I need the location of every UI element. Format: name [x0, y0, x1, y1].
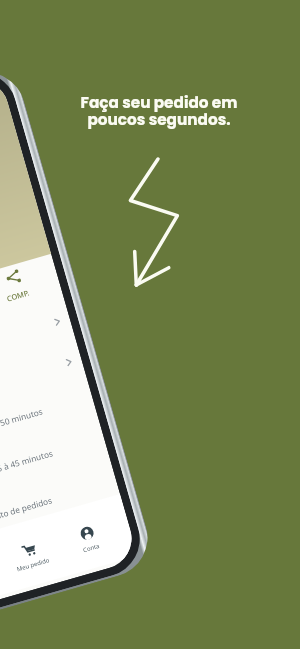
- other: Compartilhar: [4, 268, 22, 286]
- staticText: Entrega: 30 à 50 minutos: [0, 405, 45, 443]
- button[interactable]: Compartilhar: [0, 264, 44, 307]
- staticText: Faça seu pedido em poucos segundos.: [59, 92, 259, 131]
- staticText: Meu pedido: [16, 556, 51, 573]
- button[interactable]: Conta: [58, 519, 119, 560]
- button[interactable]: Horários de atendimento: [0, 339, 87, 439]
- staticText: Retirada: 25 à 45 minutos: [0, 447, 55, 485]
- button[interactable]: Meu pedido: [0, 536, 61, 576]
- button[interactable]: Formas de pagamento: [0, 299, 75, 399]
- staticText: Conta: [82, 542, 101, 554]
- staticText: Acompanhamento de pedidos: [0, 494, 53, 537]
- staticText: COMP.: [5, 287, 31, 303]
